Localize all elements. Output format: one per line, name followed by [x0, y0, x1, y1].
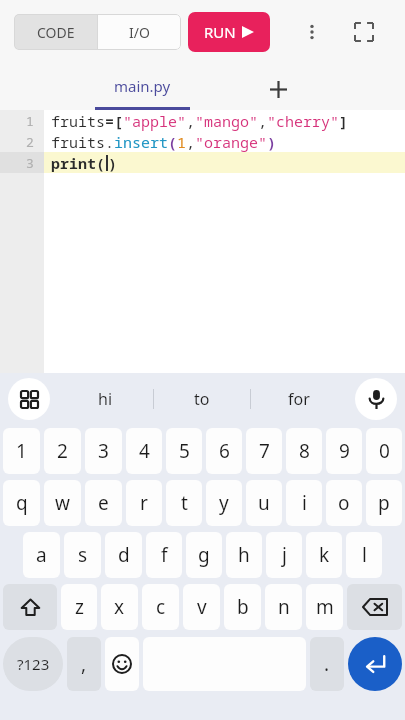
staticText: r [140, 490, 148, 516]
button[interactable]: 0 [366, 428, 402, 474]
staticText: x [114, 594, 125, 620]
button[interactable]: y [206, 480, 242, 526]
button[interactable]: d [105, 532, 142, 578]
staticText: 3 [26, 154, 34, 172]
button[interactable]: . [310, 637, 344, 691]
staticText: fruits=["apple","mango","cherry"] [51, 111, 349, 131]
staticText: y [219, 490, 229, 516]
staticText: RUN [204, 22, 236, 42]
button[interactable]: CODE [14, 14, 97, 50]
button[interactable]: hi [58, 373, 153, 425]
button[interactable]: main.py [95, 65, 190, 110]
button[interactable]: 6 [206, 428, 242, 474]
button[interactable]: l [346, 532, 382, 578]
staticText: h [238, 542, 250, 568]
button[interactable]: Voice input [355, 378, 397, 420]
staticText: q [16, 490, 28, 516]
button[interactable]: Toolbar [8, 378, 50, 420]
staticText: . [324, 651, 330, 677]
button[interactable]: e [85, 480, 122, 526]
button[interactable]: w [44, 480, 81, 526]
button[interactable]: p [366, 480, 402, 526]
staticText: 3 [98, 438, 109, 464]
button[interactable]: g [186, 532, 222, 578]
button[interactable]: n [265, 584, 302, 630]
staticText: p [378, 490, 390, 516]
staticText: 8 [299, 438, 310, 464]
button[interactable]: Enter [348, 637, 402, 691]
button[interactable]: 9 [326, 428, 362, 474]
staticText: 1 [26, 112, 34, 130]
staticText: e [98, 490, 109, 516]
staticText: hi [98, 388, 113, 410]
button[interactable]: x [101, 584, 138, 630]
button[interactable]: More options [292, 12, 332, 52]
staticText: j [282, 542, 287, 568]
staticText: n [278, 594, 290, 620]
button[interactable]: k [306, 532, 342, 578]
button[interactable]: z [61, 584, 97, 630]
staticText: k [319, 542, 330, 568]
button[interactable]: New file [258, 69, 298, 109]
staticText: 6 [219, 438, 230, 464]
staticText: g [198, 542, 210, 568]
button[interactable]: ?123 [3, 637, 63, 691]
button[interactable]: Emoji [105, 637, 139, 691]
button[interactable]: b [224, 584, 261, 630]
staticText: main.py [114, 76, 171, 96]
button[interactable]: for [251, 373, 347, 425]
button[interactable]: j [266, 532, 302, 578]
button[interactable]: i [286, 480, 322, 526]
staticText: a [36, 542, 47, 568]
button[interactable]: 5 [166, 428, 202, 474]
button[interactable]: h [226, 532, 262, 578]
button[interactable]: Fullscreen [344, 12, 384, 52]
button[interactable]: Backspace [347, 584, 402, 630]
button[interactable]: a [23, 532, 60, 578]
staticText: 9 [339, 438, 350, 464]
button[interactable]: m [306, 584, 343, 630]
staticText: v [197, 594, 207, 620]
button[interactable]: r [126, 480, 162, 526]
button[interactable]: q [3, 480, 40, 526]
staticText: 7 [259, 438, 270, 464]
button[interactable]: 4 [126, 428, 162, 474]
staticText: for [288, 388, 310, 410]
button[interactable]: c [142, 584, 179, 630]
staticText: o [338, 490, 350, 516]
staticText: fruits.insert(1,"orange") [51, 132, 277, 152]
staticText: l [362, 542, 367, 568]
button[interactable]: to [154, 373, 250, 425]
button[interactable]: , [67, 637, 101, 691]
staticText: 0 [379, 438, 390, 464]
staticText: 5 [179, 438, 190, 464]
button[interactable]: t [166, 480, 202, 526]
button[interactable]: I/O [98, 14, 181, 50]
button[interactable]: 3 [85, 428, 122, 474]
button[interactable]: 1 [3, 428, 40, 474]
staticText: t [181, 490, 188, 516]
button[interactable]: s [64, 532, 101, 578]
button[interactable]: RUN [188, 12, 270, 52]
staticText: i [302, 490, 307, 516]
staticText: 2 [57, 438, 68, 464]
button[interactable]: Shift [3, 584, 57, 630]
staticText: , [81, 651, 87, 677]
staticText: b [237, 594, 249, 620]
staticText: z [75, 594, 84, 620]
button[interactable]: 2 [44, 428, 81, 474]
staticText: ) [108, 153, 118, 173]
staticText: c [156, 594, 166, 620]
staticText: m [316, 594, 334, 620]
button[interactable]: u [246, 480, 282, 526]
button[interactable]: f [146, 532, 182, 578]
staticText: w [55, 490, 70, 516]
staticText: 4 [139, 438, 150, 464]
button[interactable]: 7 [246, 428, 282, 474]
staticText: to [194, 388, 210, 410]
button[interactable]: o [326, 480, 362, 526]
button[interactable]: 8 [286, 428, 322, 474]
staticText: d [118, 542, 130, 568]
button[interactable]: v [183, 584, 220, 630]
